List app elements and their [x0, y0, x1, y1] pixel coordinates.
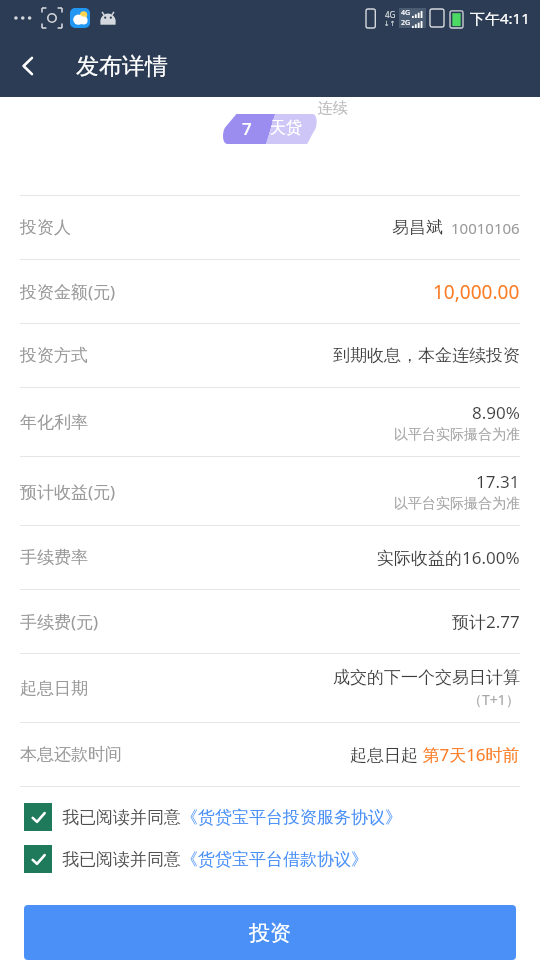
- staticText: 本息还款时间: [20, 744, 122, 765]
- staticText: （T+1）: [468, 690, 520, 709]
- button[interactable]: 投资金额(元): [0, 260, 540, 323]
- staticText: 投资: [249, 920, 291, 946]
- staticText: 手续费率: [20, 547, 88, 568]
- staticText: 到期收息，本金连续投资: [333, 345, 520, 366]
- staticText: 以平台实际撮合为准: [394, 495, 520, 513]
- button[interactable]: 投资方式: [0, 324, 540, 387]
- staticText: 连续: [318, 99, 348, 118]
- button[interactable]: 起息日期: [0, 654, 540, 722]
- button[interactable]: 本息还款时间: [0, 723, 540, 786]
- staticText: 预计2.77: [452, 610, 520, 633]
- staticText: 成交的下一个交易日计算: [333, 667, 520, 688]
- staticText: 8.90%: [472, 401, 520, 424]
- staticText: 我已阅读并同意《货贷宝平台投资服务协议》: [62, 807, 402, 828]
- staticText: 年化利率: [20, 412, 88, 433]
- staticText: 4G: [401, 8, 411, 18]
- staticText: 7: [242, 117, 252, 140]
- staticText: 4G: [385, 9, 396, 20]
- staticText: 10010106: [451, 218, 520, 238]
- staticText: 以平台实际撮合为准: [394, 426, 520, 444]
- button[interactable]: 预计收益(元): [0, 457, 540, 525]
- staticText: 手续费(元): [20, 610, 99, 633]
- staticText: 我已阅读并同意《货贷宝平台借款协议》: [62, 849, 368, 870]
- staticText: 预计收益(元): [20, 480, 116, 503]
- staticText: 投资方式: [20, 345, 88, 366]
- staticText: 天贷: [270, 118, 302, 138]
- staticText: 易昌斌: [392, 217, 443, 238]
- staticText: 实际收益的16.00%: [377, 546, 520, 569]
- button[interactable]: 手续费(元): [0, 590, 540, 653]
- button[interactable]: 投资人: [0, 196, 540, 259]
- staticText: 起息日起 第7天16时前: [350, 743, 520, 766]
- staticText: 投资人: [20, 217, 71, 238]
- staticText: 投资金额(元): [20, 280, 116, 303]
- button[interactable]: 手续费率: [0, 526, 540, 589]
- staticText: 17.31: [476, 470, 520, 493]
- staticText: 2G: [401, 18, 411, 28]
- button[interactable]: 投资: [24, 905, 516, 960]
- button[interactable]: 年化利率: [0, 388, 540, 456]
- staticText: 10,000.00: [433, 279, 520, 305]
- button[interactable]: Back: [0, 38, 56, 94]
- staticText: 起息日期: [20, 678, 88, 699]
- staticText: 下午4:11: [470, 8, 530, 28]
- button[interactable]: 我已阅读并同意《货贷宝平台投资服务协议》: [0, 801, 540, 833]
- button[interactable]: 我已阅读并同意《货贷宝平台借款协议》: [0, 843, 540, 875]
- staticText: ↓↑: [384, 20, 396, 28]
- staticText: 发布详情: [76, 52, 168, 81]
